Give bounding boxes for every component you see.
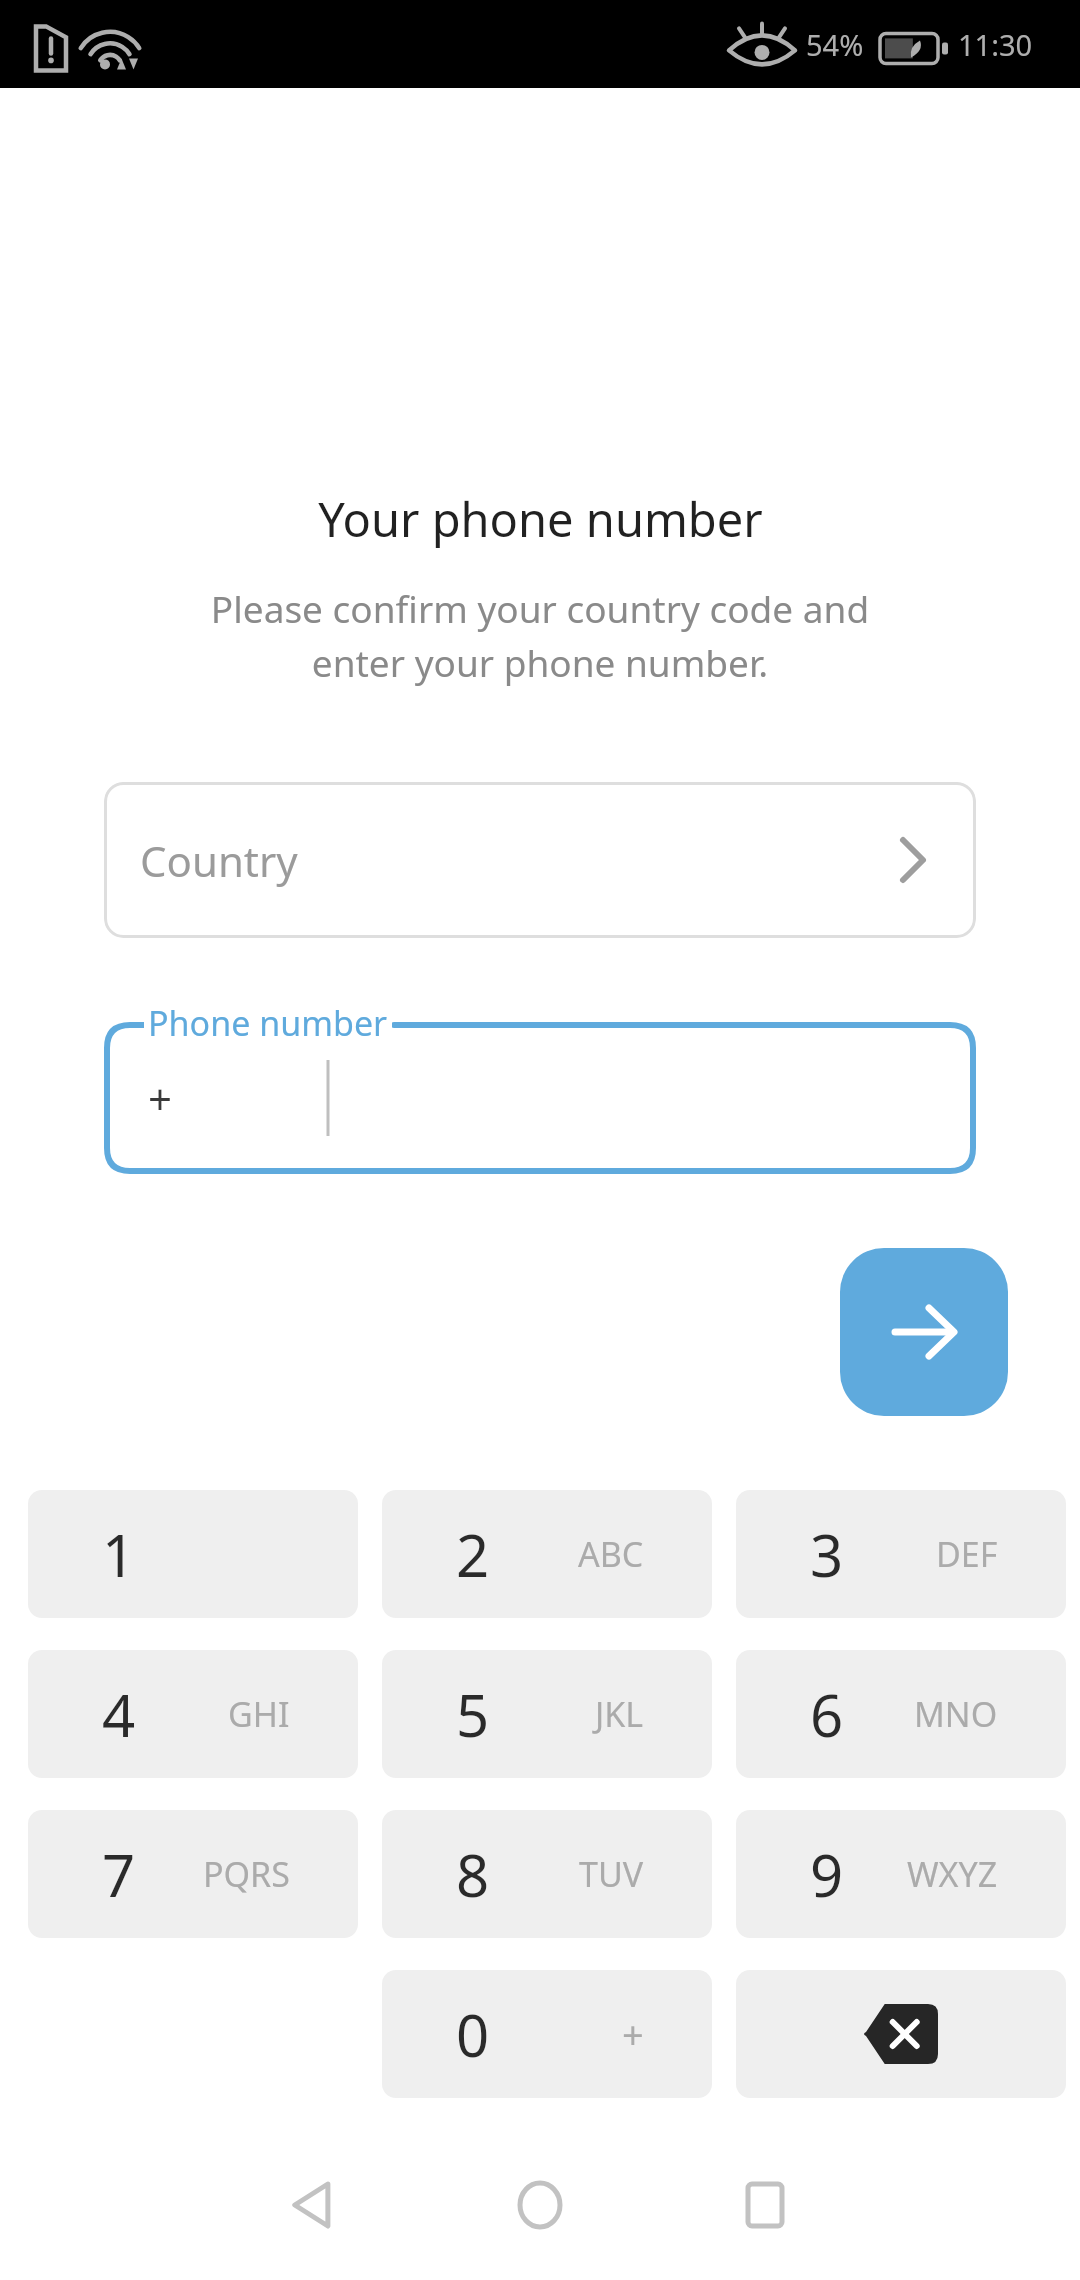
staticText: 6 <box>810 1675 844 1754</box>
button[interactable]: 7 <box>28 1810 358 1938</box>
staticText: Please confirm your country code and ent… <box>100 583 980 688</box>
staticText: Country <box>140 832 298 889</box>
button[interactable]: 4 <box>28 1650 358 1778</box>
button[interactable]: Backspace <box>736 1970 1066 2098</box>
staticText: TUV <box>579 1851 644 1897</box>
button[interactable]: 0 <box>382 1970 712 2098</box>
button[interactable]: 3 <box>736 1490 1066 1618</box>
staticText: DEF <box>936 1531 998 1577</box>
staticText: 5 <box>456 1675 490 1754</box>
button[interactable]: Phone number <box>104 1022 976 1174</box>
button[interactable]: Recent apps <box>720 2160 810 2250</box>
button[interactable]: 9 <box>736 1810 1066 1938</box>
staticText: 0 <box>456 1995 490 2074</box>
button[interactable]: 2 <box>382 1490 712 1618</box>
staticText: 54% <box>806 25 864 64</box>
button[interactable]: Country <box>104 782 976 938</box>
staticText: 9 <box>810 1835 844 1914</box>
button[interactable]: 5 <box>382 1650 712 1778</box>
staticText: WXYZ <box>907 1851 998 1897</box>
staticText: Phone number <box>148 1000 388 1046</box>
staticText: + <box>148 1070 173 1127</box>
staticText: PQRS <box>203 1851 290 1897</box>
staticText: Your phone number <box>318 487 763 551</box>
button[interactable]: 6 <box>736 1650 1066 1778</box>
staticText: 8 <box>456 1835 490 1914</box>
staticText: + <box>622 2008 644 2060</box>
button[interactable]: 1 <box>28 1490 358 1618</box>
staticText: 7 <box>102 1835 136 1914</box>
staticText: 1 <box>102 1515 136 1594</box>
button[interactable]: Back <box>270 2160 360 2250</box>
button[interactable]: Next <box>840 1248 1008 1416</box>
staticText: MNO <box>914 1691 998 1737</box>
staticText: GHI <box>228 1691 290 1737</box>
staticText: ABC <box>578 1531 644 1577</box>
staticText: 2 <box>456 1515 490 1594</box>
staticText: JKL <box>595 1691 644 1737</box>
staticText: 4 <box>102 1675 136 1754</box>
button[interactable]: Home <box>495 2160 585 2250</box>
staticText: 11:30 <box>958 25 1033 64</box>
staticText: 3 <box>810 1515 844 1594</box>
button[interactable]: 8 <box>382 1810 712 1938</box>
